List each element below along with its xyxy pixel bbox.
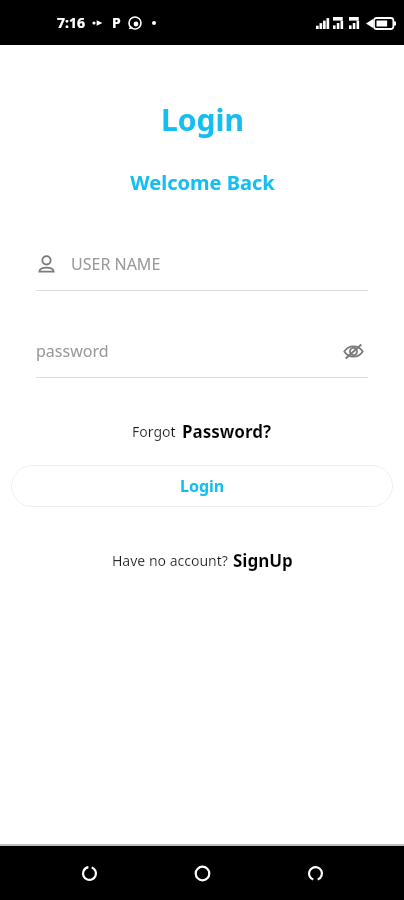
button[interactable]: Home: [178, 849, 226, 897]
button[interactable]: Have no account?: [102, 545, 303, 576]
button[interactable]: Recent apps: [65, 849, 113, 897]
staticText: SignUp: [233, 549, 293, 572]
staticText: Have no account?: [112, 551, 228, 570]
button[interactable]: password: [36, 333, 368, 378]
staticText: Welcome Back: [130, 169, 275, 196]
staticText: 7:16: [57, 13, 85, 32]
button[interactable]: USER NAME: [36, 246, 368, 291]
staticText: Forgot: [132, 422, 176, 441]
button[interactable]: Show password: [338, 336, 368, 366]
staticText: USER NAME: [71, 253, 161, 275]
button[interactable]: Forgot: [122, 416, 282, 447]
staticText: Login: [161, 99, 244, 140]
staticText: Login: [180, 475, 225, 497]
staticText: password: [36, 340, 109, 362]
staticText: Password?: [182, 420, 272, 443]
staticText: P: [112, 13, 121, 32]
button[interactable]: Back: [291, 849, 339, 897]
button[interactable]: Login: [11, 465, 393, 507]
